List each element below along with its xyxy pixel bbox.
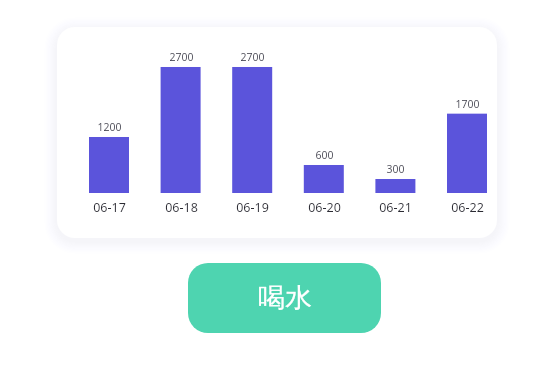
staticText: 300 bbox=[386, 162, 405, 176]
staticText: 1200 bbox=[97, 120, 122, 134]
staticText: 06-18 bbox=[165, 199, 198, 216]
staticText: 06-17 bbox=[93, 199, 126, 216]
staticText: 600 bbox=[315, 148, 334, 162]
staticText: 06-21 bbox=[379, 199, 412, 216]
staticText: 06-20 bbox=[308, 199, 341, 216]
staticText: 2700 bbox=[169, 50, 194, 64]
staticText: 06-19 bbox=[236, 199, 269, 216]
staticText: 2700 bbox=[240, 50, 265, 64]
staticText: 1700 bbox=[455, 97, 480, 111]
staticText: 喝水 bbox=[258, 281, 312, 315]
button[interactable]: 喝水 bbox=[188, 263, 381, 333]
button[interactable] bbox=[57, 27, 497, 238]
staticText: 06-22 bbox=[451, 199, 484, 216]
